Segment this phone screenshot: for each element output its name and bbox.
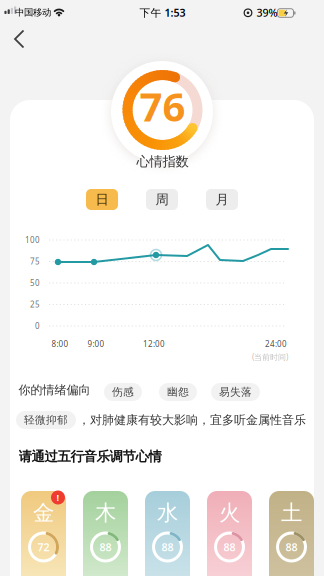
- staticText: 中国移动: [15, 7, 51, 18]
- staticText: 0: [35, 321, 40, 331]
- staticText: 木: [95, 500, 116, 526]
- staticText: 幽怨: [167, 385, 189, 398]
- button[interactable]: 火: [207, 491, 252, 576]
- staticText: 76: [139, 79, 185, 132]
- staticText: 日: [95, 191, 108, 208]
- button[interactable]: 水: [145, 491, 190, 576]
- staticText: 火: [219, 500, 240, 526]
- staticText: 金: [33, 500, 54, 526]
- staticText: 75: [30, 256, 40, 267]
- staticText: (当前时间): [252, 352, 288, 362]
- staticText: 易失落: [219, 385, 252, 398]
- staticText: 39%: [256, 5, 277, 20]
- staticText: 12:00: [143, 339, 165, 349]
- button[interactable]: 月: [206, 189, 238, 210]
- button[interactable]: 金: [21, 491, 66, 576]
- button[interactable]: 木: [83, 491, 128, 576]
- staticText: 88: [99, 540, 111, 554]
- staticText: 伤感: [112, 385, 134, 398]
- staticText: 月: [215, 191, 228, 208]
- staticText: 水: [157, 500, 178, 526]
- button[interactable]: 日: [86, 189, 118, 210]
- button[interactable]: 土: [269, 491, 314, 576]
- staticText: 周: [155, 191, 168, 208]
- staticText: 50: [30, 278, 40, 288]
- staticText: 88: [285, 540, 297, 554]
- staticText: 你的情绪偏向: [18, 383, 90, 397]
- button[interactable]: 周: [146, 189, 178, 210]
- staticText: 请通过五行音乐调节心情: [18, 448, 161, 465]
- staticText: 8:00: [51, 339, 68, 349]
- staticText: 土: [281, 500, 302, 526]
- staticText: 9:00: [87, 339, 104, 349]
- staticText: 100: [25, 235, 40, 245]
- staticText: 25: [30, 299, 40, 310]
- staticText: 88: [223, 540, 235, 554]
- staticText: 轻微抑郁: [24, 413, 68, 426]
- button[interactable]: [6, 21, 33, 56]
- staticText: 72: [37, 540, 49, 554]
- staticText: !: [56, 491, 59, 504]
- staticText: 24:00: [265, 339, 287, 349]
- staticText: 下午 1:53: [139, 5, 185, 20]
- staticText: 88: [161, 540, 173, 554]
- staticText: ，对肺健康有较大影响，宜多听金属性音乐: [78, 413, 306, 427]
- staticText: 心情指数: [136, 153, 188, 170]
